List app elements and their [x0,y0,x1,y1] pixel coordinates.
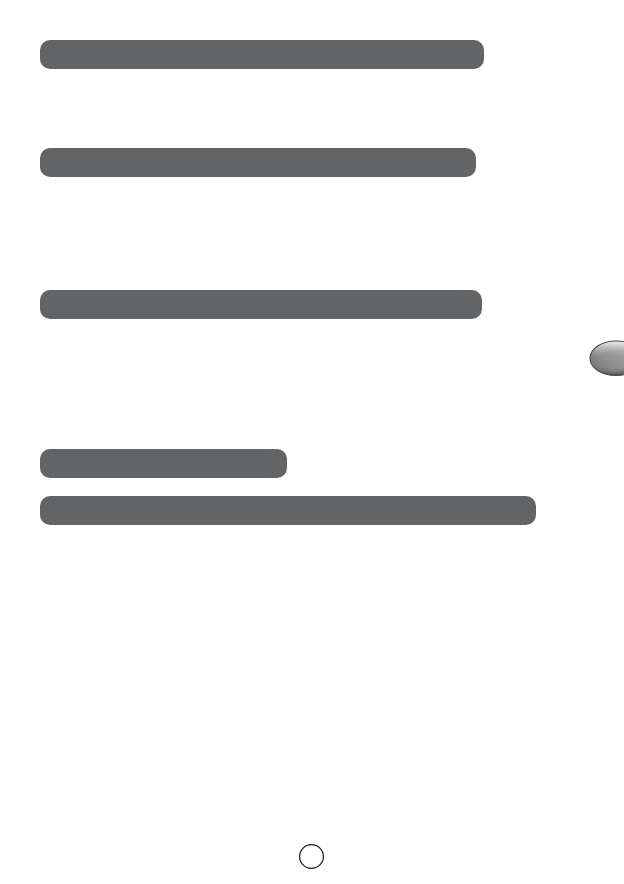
button[interactable]: Headline placeholder [40,40,484,69]
button[interactable]: Scroll position [590,341,624,376]
button[interactable]: Paragraph placeholder 3 [40,449,287,478]
button[interactable]: Paragraph placeholder 2 [40,290,482,319]
button[interactable]: Paragraph placeholder 1 [40,148,476,177]
button[interactable]: Paragraph placeholder 4 [40,496,536,525]
button[interactable]: Loading [299,844,324,869]
